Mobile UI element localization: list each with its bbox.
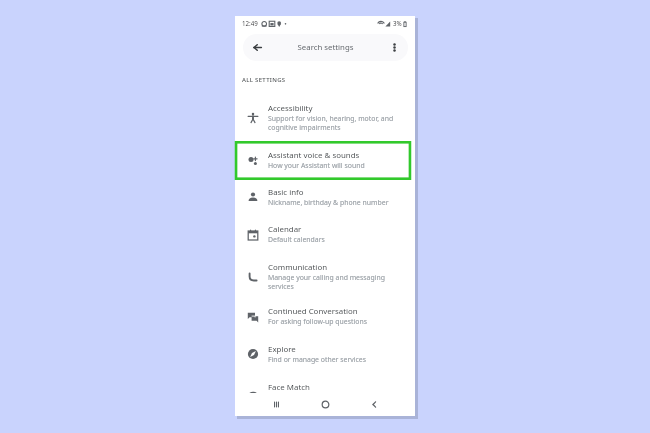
staticText: Explore bbox=[268, 344, 296, 355]
staticText: 12:49 bbox=[242, 19, 258, 27]
staticText: Basic info bbox=[268, 187, 304, 198]
button[interactable]: Explore bbox=[235, 341, 415, 375]
button[interactable]: Communication bbox=[235, 259, 415, 293]
staticText: Assistant voice & sounds bbox=[268, 150, 360, 161]
button[interactable]: Assistant voice & sounds bbox=[235, 147, 415, 181]
button[interactable]: Basic info bbox=[235, 184, 415, 218]
staticText: Support for vision, hearing, motor, and … bbox=[268, 114, 408, 132]
button[interactable]: Face Match bbox=[235, 379, 415, 413]
button[interactable]: Back bbox=[244, 34, 271, 61]
button[interactable]: Accessibility bbox=[235, 100, 415, 134]
staticText: Find or manage other services bbox=[268, 355, 408, 364]
staticText: How your Assistant will sound bbox=[268, 161, 408, 170]
staticText: Nickname, birthday & phone number bbox=[268, 198, 408, 207]
staticText: Communication bbox=[268, 262, 328, 273]
staticText: ALL SETTINGS bbox=[242, 76, 286, 84]
button[interactable]: More options bbox=[381, 34, 408, 61]
button[interactable]: Back bbox=[243, 34, 408, 61]
button[interactable]: Back bbox=[364, 394, 384, 414]
staticText: 3% bbox=[393, 19, 402, 27]
staticText: For asking follow-up questions bbox=[268, 317, 408, 326]
staticText: Face Match bbox=[268, 382, 310, 393]
staticText: Accessibility bbox=[268, 103, 313, 114]
staticText: Manage your calling and messaging servic… bbox=[268, 273, 408, 291]
staticText: Default calendars bbox=[268, 235, 408, 244]
staticText: Calendar bbox=[268, 224, 302, 235]
button[interactable]: Continued Conversation bbox=[235, 303, 415, 337]
button[interactable]: Recents bbox=[266, 394, 286, 414]
button[interactable]: Calendar bbox=[235, 221, 415, 255]
button[interactable]: Home bbox=[315, 394, 335, 414]
staticText: Search settings bbox=[243, 42, 408, 53]
staticText: Continued Conversation bbox=[268, 306, 358, 317]
